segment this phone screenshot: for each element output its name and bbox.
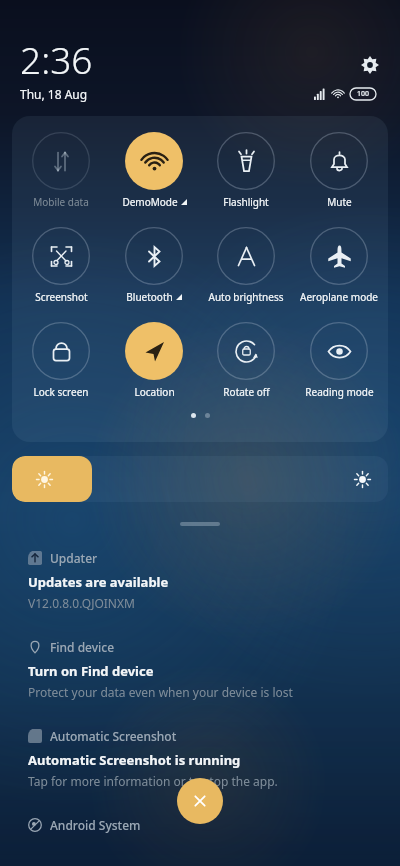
staticText: Aeroplane mode — [300, 290, 378, 304]
button[interactable]: Screenshot — [17, 227, 105, 304]
staticText: 100 — [357, 89, 370, 99]
staticText: Updates are available — [28, 573, 169, 591]
staticText: Automatic Screenshot is running — [28, 751, 241, 769]
staticText: Screenshot — [35, 290, 88, 304]
button[interactable]: Flashlight — [202, 132, 290, 209]
button[interactable]: Aeroplane mode — [295, 227, 383, 304]
button[interactable]: Expand — [180, 522, 220, 526]
button[interactable]: Reading mode — [295, 322, 383, 399]
staticText: Mobile data — [33, 195, 89, 209]
staticText: Location — [134, 385, 175, 399]
button[interactable]: Updater — [28, 550, 372, 611]
staticText: Lock screen — [33, 385, 89, 399]
staticText: DemoMode — [122, 195, 178, 209]
button[interactable]: Mute — [295, 132, 383, 209]
staticText: Thu, 18 Aug — [20, 86, 88, 102]
button[interactable]: Automatic Screenshot — [28, 728, 372, 789]
button[interactable]: Lock screen — [17, 322, 105, 399]
staticText: Reading mode — [305, 385, 374, 399]
button[interactable]: Rotate off — [202, 322, 290, 399]
staticText: Automatic Screenshot — [50, 728, 177, 744]
staticText: Auto brightness — [208, 290, 284, 304]
button[interactable]: Bluetooth — [110, 227, 198, 304]
button[interactable]: Brightness — [12, 456, 388, 502]
button[interactable]: Find device — [28, 639, 372, 700]
staticText: Tap for more information or to stop the … — [28, 773, 278, 789]
button[interactable]: Clear all notifications — [177, 778, 223, 824]
staticText: Android System — [50, 817, 141, 833]
button[interactable]: Auto brightness — [202, 227, 290, 304]
button[interactable]: Mobile data — [17, 132, 105, 209]
staticText: Turn on Find device — [28, 662, 154, 680]
staticText: Find device — [50, 639, 115, 655]
staticText: Rotate off — [223, 385, 270, 399]
button[interactable]: DemoMode — [110, 132, 198, 209]
staticText: 2:36 — [20, 34, 93, 84]
button[interactable]: Settings — [356, 51, 384, 79]
staticText: Mute — [327, 195, 352, 209]
staticText: V12.0.8.0.QJOINXM — [28, 595, 135, 611]
staticText: Protect your data even when your device … — [28, 684, 293, 700]
staticText: Bluetooth — [126, 290, 173, 304]
staticText: Flashlight — [223, 195, 269, 209]
button[interactable]: Location — [110, 322, 198, 399]
staticText: Updater — [50, 550, 98, 566]
